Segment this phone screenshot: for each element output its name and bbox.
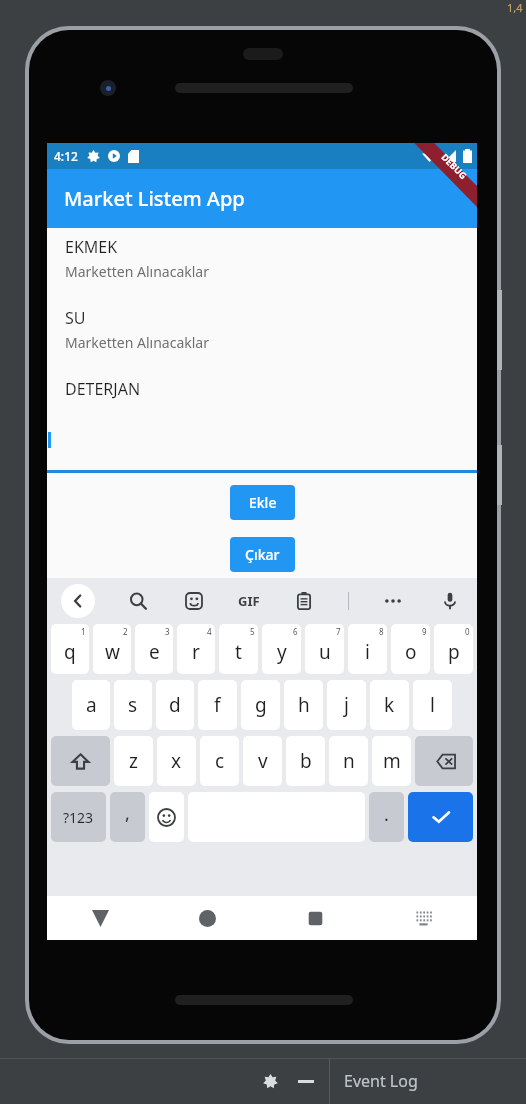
button[interactable]: Recents xyxy=(261,896,369,940)
button[interactable]: Emoji xyxy=(149,792,184,842)
staticText: 5 xyxy=(250,626,255,637)
staticText: 4:12 xyxy=(54,148,78,164)
staticText: d xyxy=(169,692,181,718)
button[interactable]: b xyxy=(286,736,325,786)
button[interactable]: Settings xyxy=(255,1066,285,1096)
button[interactable]: 1 xyxy=(51,624,89,674)
button[interactable]: k xyxy=(370,680,409,730)
button[interactable]: v xyxy=(243,736,282,786)
staticText: r xyxy=(192,639,200,665)
staticText: 3 xyxy=(165,626,170,637)
staticText: c xyxy=(215,748,225,774)
button[interactable]: Switch keyboard xyxy=(369,896,477,940)
button[interactable]: 7 xyxy=(305,624,344,674)
button[interactable]: GIF xyxy=(238,592,260,610)
button[interactable]: 0 xyxy=(434,624,473,674)
staticText: u xyxy=(319,639,331,665)
staticText: w xyxy=(105,639,120,665)
button[interactable]: l xyxy=(413,680,452,730)
staticText: k xyxy=(384,692,395,718)
button[interactable]: Event Log xyxy=(344,1070,418,1092)
staticText: e xyxy=(149,639,160,665)
button[interactable]: Voice input xyxy=(437,588,463,614)
button[interactable]: , xyxy=(110,792,145,842)
staticText: s xyxy=(128,692,138,718)
staticText: m xyxy=(383,748,401,774)
staticText: GIF xyxy=(238,592,260,610)
staticText: 4 xyxy=(207,626,212,637)
button[interactable]: Ekle xyxy=(230,485,295,520)
staticText: 1,4 xyxy=(507,0,523,15)
button[interactable]: EKMEK xyxy=(47,236,477,281)
staticText: Çıkar xyxy=(245,545,280,564)
button[interactable]: 8 xyxy=(348,624,387,674)
button[interactable]: DETERJAN xyxy=(47,378,477,400)
staticText: Marketten Alınacaklar xyxy=(65,262,209,281)
staticText: 8 xyxy=(379,626,384,637)
staticText: DEBUG xyxy=(439,151,470,181)
button[interactable]: f xyxy=(198,680,237,730)
button[interactable]: More options xyxy=(380,588,406,614)
staticText: Event Log xyxy=(344,1070,418,1092)
staticText: a xyxy=(86,692,97,718)
button[interactable]: h xyxy=(284,680,323,730)
staticText: g xyxy=(255,692,267,718)
staticText: SU xyxy=(65,307,86,329)
staticText: 2 xyxy=(123,626,128,637)
button[interactable]: Enter xyxy=(408,792,473,842)
staticText: i xyxy=(365,639,370,665)
staticText: Market Listem App xyxy=(64,185,245,212)
staticText: DETERJAN xyxy=(65,378,141,400)
button[interactable]: x xyxy=(157,736,196,786)
button[interactable]: m xyxy=(372,736,411,786)
staticText: Marketten Alınacaklar xyxy=(65,333,209,352)
button[interactable]: . xyxy=(369,792,404,842)
staticText: f xyxy=(214,692,221,718)
staticText: 1 xyxy=(81,626,86,637)
staticText: EKMEK xyxy=(65,236,118,258)
button[interactable]: z xyxy=(114,736,153,786)
button[interactable]: c xyxy=(200,736,239,786)
button[interactable]: Minimize xyxy=(291,1066,321,1096)
staticText: z xyxy=(129,748,138,774)
staticText: 9 xyxy=(422,626,427,637)
button[interactable]: 5 xyxy=(219,624,258,674)
staticText: . xyxy=(384,802,389,827)
button[interactable]: 2 xyxy=(93,624,131,674)
button[interactable]: Stickers xyxy=(181,588,207,614)
staticText: ?123 xyxy=(63,808,94,827)
button[interactable]: s xyxy=(114,680,152,730)
staticText: q xyxy=(64,639,76,665)
button[interactable]: 3 xyxy=(135,624,173,674)
button[interactable]: Backspace xyxy=(415,736,473,786)
button[interactable]: g xyxy=(241,680,280,730)
button[interactable]: 6 xyxy=(262,624,301,674)
button[interactable]: n xyxy=(329,736,368,786)
button[interactable]: Back xyxy=(61,584,95,618)
button[interactable]: Home xyxy=(154,896,261,940)
staticText: b xyxy=(300,748,312,774)
staticText: y xyxy=(277,639,287,665)
staticText: t xyxy=(235,639,242,665)
button[interactable]: 4 xyxy=(177,624,215,674)
button[interactable]: d xyxy=(156,680,194,730)
button[interactable]: Search xyxy=(125,588,151,614)
button[interactable]: j xyxy=(327,680,366,730)
button[interactable]: ?123 xyxy=(51,792,106,842)
staticText: n xyxy=(343,748,355,774)
button[interactable]: a xyxy=(72,680,110,730)
button[interactable]: Hide keyboard xyxy=(47,896,154,940)
staticText: h xyxy=(298,692,310,718)
staticText: l xyxy=(430,692,435,718)
staticText: 0 xyxy=(465,626,470,637)
staticText: p xyxy=(448,639,460,665)
button[interactable]: 9 xyxy=(391,624,430,674)
button[interactable]: Clipboard xyxy=(291,588,317,614)
button[interactable]: Çıkar xyxy=(230,537,295,572)
staticText: , xyxy=(125,801,130,826)
button[interactable]: Market Listem App xyxy=(47,169,477,228)
button[interactable]: Shift xyxy=(51,736,110,786)
staticText: v xyxy=(258,748,268,774)
button[interactable]: SU xyxy=(47,307,477,352)
